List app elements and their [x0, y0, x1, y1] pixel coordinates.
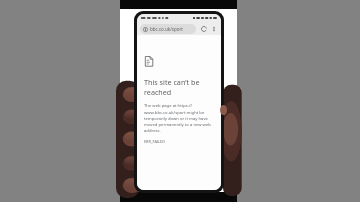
- staticText: The web page at https://www.bbc.co.uk/sp…: [144, 103, 212, 133]
- staticText: This site can’t be reached: [144, 77, 212, 97]
- button[interactable]: More options: [209, 24, 218, 33]
- button[interactable]: bbc.co.uk/sport: [140, 24, 196, 34]
- staticText: bbc.co.uk/sport: [150, 26, 183, 32]
- button[interactable]: Reload: [199, 24, 208, 33]
- staticText: ERR_FAILED: [144, 139, 166, 144]
